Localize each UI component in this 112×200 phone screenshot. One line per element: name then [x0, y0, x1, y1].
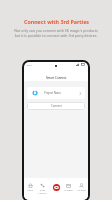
button[interactable]: My Page — [75, 183, 88, 192]
staticText: Home — [27, 189, 33, 192]
staticText: Not only can you connect with SK magic's… — [14, 28, 98, 38]
button[interactable]: Project Nano — [27, 87, 85, 99]
button[interactable]: Smart Connect — [36, 183, 49, 195]
staticText: Smart Connect — [36, 189, 49, 195]
staticText: Connect — [51, 104, 62, 108]
staticText: Connect with 3rd Parties — [24, 18, 89, 25]
staticText: 9:41 — [27, 63, 32, 66]
button[interactable]: SK magic — [62, 183, 75, 192]
button[interactable]: Voice assistant — [53, 184, 60, 191]
staticText: Project Nano — [44, 91, 61, 95]
button[interactable]: Connect — [27, 102, 85, 110]
staticText: Smart Connect — [46, 76, 67, 80]
staticText: SK magic — [64, 189, 73, 192]
staticText: My Page — [77, 189, 86, 192]
button[interactable]: Home — [24, 183, 36, 192]
